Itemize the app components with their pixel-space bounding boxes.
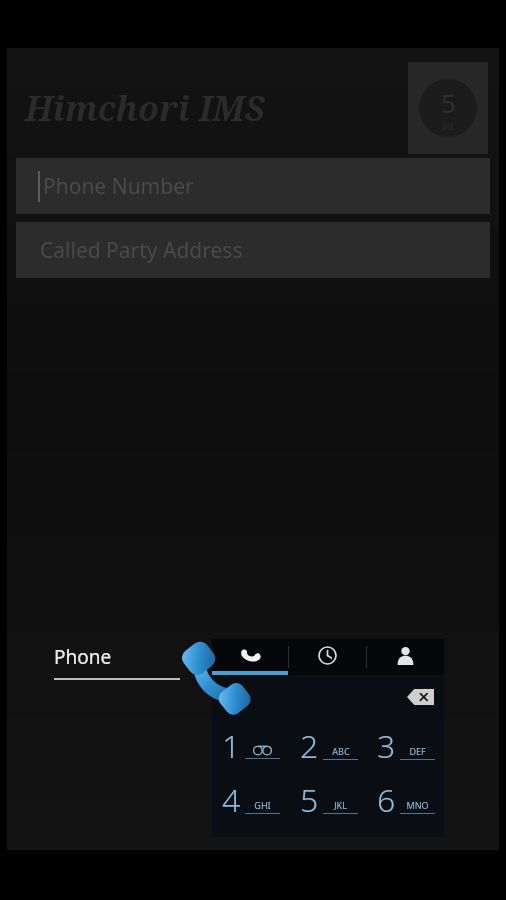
staticText: 6 [377,778,396,822]
button[interactable]: Called Party Address [16,222,490,278]
button[interactable]: 5 [290,773,367,827]
staticText: 1 [222,724,241,768]
staticText: ABC [332,745,350,757]
staticText: Phone Number [43,172,194,201]
button[interactable]: 1 [212,719,290,773]
button[interactable]: Call log tab [289,639,366,675]
button[interactable]: 6 [367,773,444,827]
staticText: DEF [409,745,426,757]
staticText: Himchori IMS [25,85,408,131]
button[interactable]: Dialpad tab [212,639,288,675]
staticText: 2 [300,724,319,768]
staticText: 5 [441,85,456,120]
button[interactable]: Contacts tab [367,639,444,675]
button[interactable]: Show dialpad [408,62,488,154]
staticText: 4 [222,778,241,822]
staticText: GHI [254,799,271,811]
staticText: Phone [54,644,112,670]
button[interactable]: Phone Number [16,158,490,214]
staticText: 5 [300,778,319,822]
button[interactable]: 3 [367,719,444,773]
button[interactable]: 2 [290,719,367,773]
staticText: MNO [406,799,429,811]
staticText: JKL [334,799,347,811]
staticText: Called Party Address [40,236,243,265]
button[interactable]: 4 [212,773,290,827]
staticText: JKL [442,120,455,132]
staticText: 3 [377,724,396,768]
button[interactable]: Phone [54,644,180,680]
button[interactable]: Backspace [407,689,434,705]
